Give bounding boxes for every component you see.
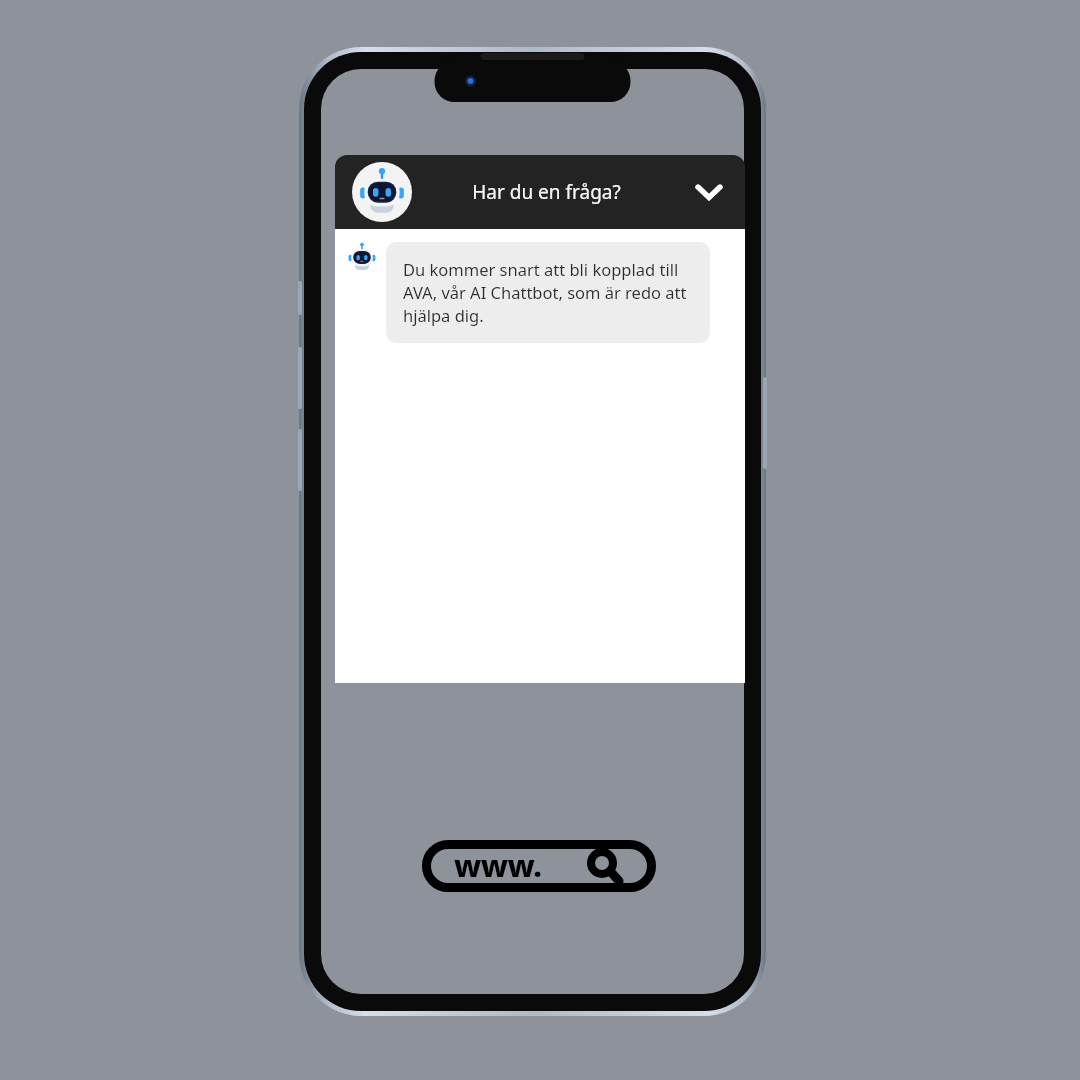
button[interactable]: Du kommer snart att bli kopplad till AVA… (386, 242, 710, 343)
staticText: Du kommer snart att bli kopplad till AVA… (403, 258, 693, 327)
button[interactable]: Chatbot avatar (335, 155, 745, 229)
button[interactable]: Minimize chat (689, 172, 729, 212)
staticText: www. (454, 844, 542, 886)
button[interactable]: Web address search bar (422, 840, 656, 892)
staticText: Har du en fråga? (472, 179, 621, 205)
other: Chatbot avatar (352, 162, 412, 222)
other: Chatbot (348, 244, 376, 272)
